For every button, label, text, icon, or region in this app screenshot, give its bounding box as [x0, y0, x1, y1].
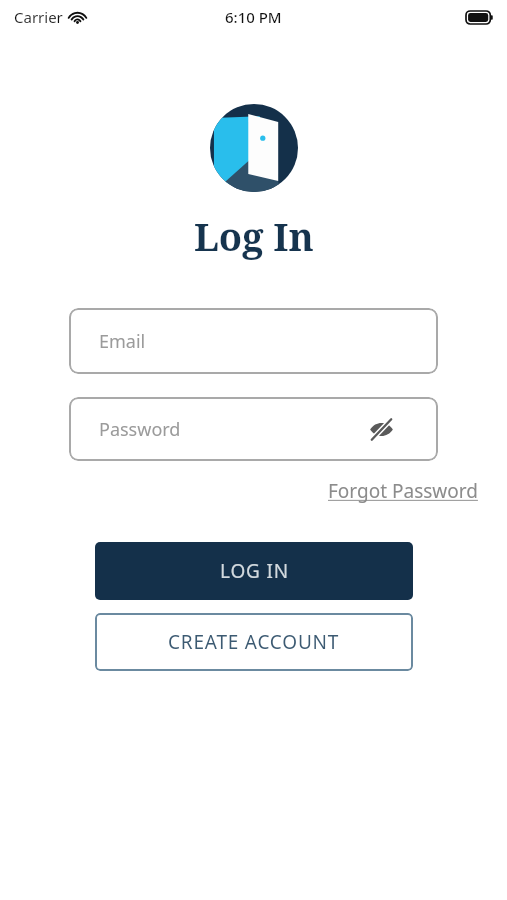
staticText: Password	[99, 417, 181, 442]
staticText: CREATE ACCOUNT	[168, 629, 340, 655]
button[interactable]: Password	[69, 397, 438, 461]
staticText: 6:10 PM	[225, 7, 282, 27]
button[interactable]: CREATE ACCOUNT	[95, 613, 413, 671]
staticText: Log In	[194, 210, 314, 262]
staticText: Forgot Password	[328, 478, 478, 504]
button[interactable]: Show password	[366, 414, 396, 444]
button[interactable]: LOG IN	[95, 542, 413, 600]
button[interactable]: Email	[69, 308, 438, 374]
staticText: LOG IN	[220, 558, 289, 584]
staticText: Email	[99, 329, 146, 354]
staticText: Carrier	[14, 7, 63, 27]
button[interactable]: Forgot Password	[324, 475, 482, 507]
